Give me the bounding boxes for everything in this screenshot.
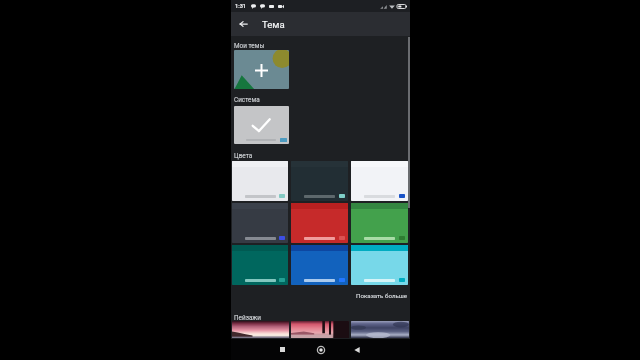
button[interactable]: Back <box>231 12 255 36</box>
staticText: Система <box>234 96 260 104</box>
button[interactable]: Colour theme <box>291 245 348 285</box>
button[interactable]: Home <box>314 343 327 356</box>
staticText: Пейзажи <box>234 314 261 322</box>
staticText: Тема <box>262 19 285 30</box>
button[interactable]: Colour theme <box>351 245 408 285</box>
button[interactable]: Wallpaper <box>351 321 409 338</box>
button[interactable]: Показать больше <box>356 291 410 300</box>
staticText: 1:31 <box>235 3 247 10</box>
staticText: Показать больше <box>356 292 408 299</box>
button[interactable]: Colour theme <box>232 203 288 243</box>
button[interactable]: Colour theme <box>351 203 408 243</box>
button[interactable]: Wallpaper <box>232 321 289 338</box>
button[interactable]: Add theme <box>234 50 289 89</box>
button[interactable]: Wallpaper <box>291 321 349 338</box>
button[interactable]: Colour theme <box>351 161 408 201</box>
button[interactable]: Recent apps <box>276 343 289 356</box>
button[interactable]: Colour theme <box>291 203 348 243</box>
button[interactable]: Back <box>350 343 363 356</box>
staticText: Цвета <box>234 152 253 160</box>
staticText: Мои темы <box>234 42 265 50</box>
button[interactable]: Colour theme <box>232 161 288 201</box>
button[interactable]: System theme <box>234 106 289 144</box>
button[interactable]: Colour theme <box>232 245 288 285</box>
button[interactable]: Colour theme <box>291 161 348 201</box>
